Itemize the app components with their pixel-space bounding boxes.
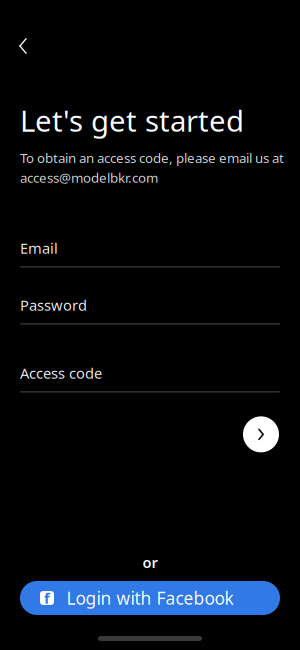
staticText: f [44,588,50,608]
button[interactable]: f [20,581,280,615]
staticText: Login with Facebook [66,586,233,609]
button[interactable]: Continue [239,412,283,456]
staticText: Email [20,238,58,258]
staticText: Password [20,295,87,315]
staticText: access@modelbkr.com [20,169,158,186]
button[interactable]: Back [8,24,68,68]
staticText: To obtain an access code, please email u… [20,149,284,167]
staticText: Let's get started [20,101,244,140]
staticText: Access code [20,363,102,383]
staticText: or [142,552,157,572]
